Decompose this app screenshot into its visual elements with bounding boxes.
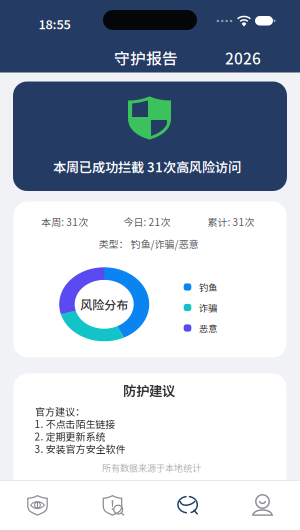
staticText: 恶意 (199, 321, 217, 335)
button[interactable]: 防护 (0, 481, 75, 530)
staticText: 18:55 (38, 14, 70, 33)
staticText: 2. 定期更新系统 (34, 429, 105, 443)
button[interactable]: 风险检测 (75, 481, 150, 530)
staticText: 防护建议 (123, 380, 175, 400)
button[interactable]: 守护报告 (150, 481, 225, 530)
staticText: 官方建议： (35, 404, 85, 418)
staticText: 风险分布 (80, 296, 128, 313)
staticText: 钓鱼 (199, 280, 217, 294)
staticText: 今日: 21次 (123, 214, 170, 229)
staticText: 守护报告 (114, 46, 178, 69)
staticText: 本周: 31次 (41, 214, 88, 229)
staticText: 诈骗 (199, 301, 217, 314)
staticText: 3. 安装官方安全软件 (34, 441, 125, 456)
staticText: 所有数据来源于本地统计 (102, 461, 201, 474)
staticText: 累计: 31次 (207, 214, 254, 229)
staticText: 本周已成功拦截 31次高风险访问 (53, 157, 241, 176)
button[interactable]: 我的 (225, 481, 300, 530)
staticText: 1. 不点击陌生链接 (34, 416, 115, 431)
staticText: 2026 (225, 46, 261, 69)
staticText: 类型： 钓鱼/诈骗/恶意 (98, 236, 198, 251)
